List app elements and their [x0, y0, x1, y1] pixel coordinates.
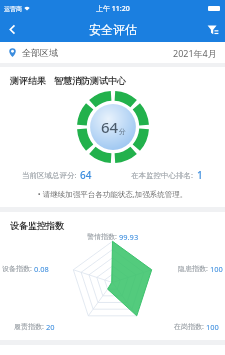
button[interactable]: Filter: [200, 17, 225, 42]
staticText: 分: [119, 127, 126, 136]
staticText: 2021年4月: [173, 47, 217, 59]
staticText: 在岗指数:: [174, 322, 204, 332]
staticText: 运营商: [4, 5, 22, 13]
staticText: 智慧消防测试中心: [54, 75, 126, 86]
staticText: 上午 11:20: [96, 4, 130, 14]
staticText: 100: [210, 264, 223, 274]
staticText: 测评结果: [10, 75, 46, 86]
staticText: 全部区域: [22, 47, 58, 58]
staticText: 设备指数:: [2, 264, 32, 274]
staticText: 警情指数:: [87, 232, 117, 242]
staticText: 隐患指数:: [178, 264, 208, 274]
staticText: 0.08: [34, 264, 49, 274]
button[interactable]: Back: [0, 17, 25, 42]
button[interactable]: 全部区域: [0, 42, 225, 63]
staticText: • 请继续加强平台各功能状态,加强系统管理。: [0, 189, 225, 199]
staticText: 安全评估: [89, 22, 137, 37]
staticText: 20: [46, 322, 55, 332]
staticText: 设备监控指数: [10, 220, 64, 231]
staticText: 履责指数:: [14, 322, 44, 332]
staticText: 在本监控中心排名:: [131, 170, 194, 180]
staticText: 64: [101, 117, 119, 137]
staticText: 99.93: [119, 232, 139, 242]
staticText: 当前区域总评分:: [22, 170, 77, 180]
staticText: 100: [206, 322, 219, 332]
staticText: 1: [197, 168, 203, 182]
staticText: 64: [80, 168, 92, 182]
